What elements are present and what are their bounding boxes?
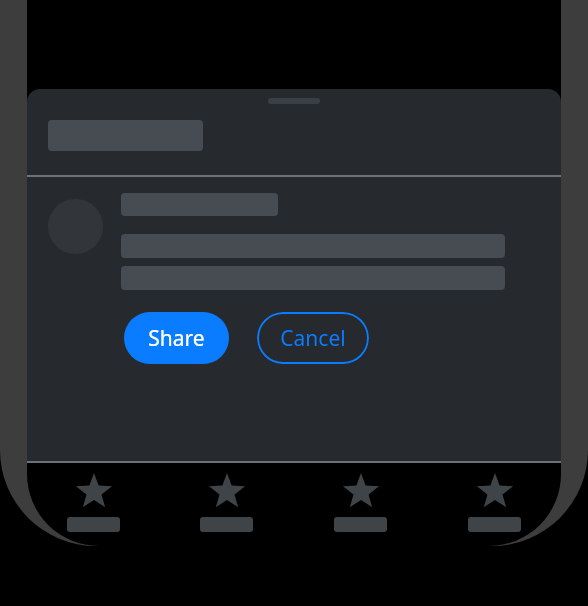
button[interactable]: Cancel [257, 312, 369, 364]
button[interactable]: Tab 2 [160, 463, 293, 543]
button[interactable]: Tab 3 [293, 463, 427, 543]
staticText: Share [148, 324, 205, 353]
button[interactable]: Tab 4 [427, 463, 561, 543]
staticText: Cancel [280, 324, 346, 353]
button[interactable]: Tab 1 [27, 463, 160, 543]
button[interactable]: Share [124, 312, 229, 364]
